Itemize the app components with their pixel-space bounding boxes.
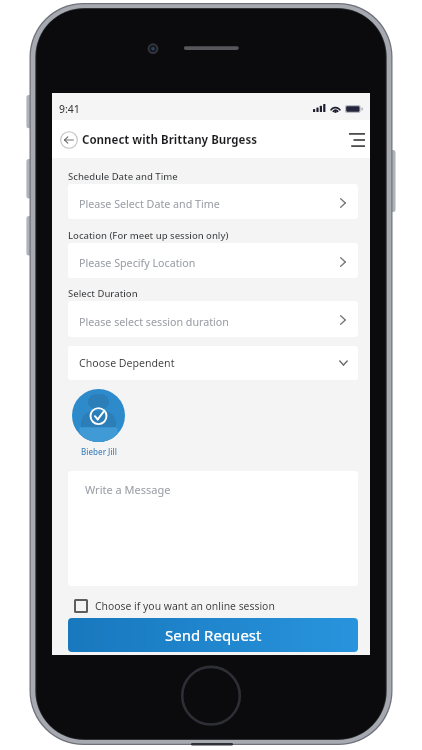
button[interactable]: Back (58, 129, 79, 150)
button[interactable]: Write a Message (68, 471, 358, 586)
staticText: Location (For meet up session only) (68, 229, 229, 242)
staticText: Choose if you want an online session (95, 599, 275, 613)
button[interactable]: Choose Dependent (68, 346, 358, 380)
staticText: Please Specify Location (79, 256, 196, 271)
button[interactable]: Bieber Jill (72, 389, 125, 457)
staticText: Please select session duration (79, 315, 229, 330)
staticText: Please Select Date and Time (79, 197, 220, 212)
staticText: Select Duration (68, 287, 138, 300)
staticText: Schedule Date and Time (68, 170, 178, 183)
button[interactable]: Menu (347, 130, 366, 149)
staticText: Choose Dependent (79, 356, 175, 370)
staticText: 9:41 (59, 102, 80, 116)
button[interactable]: Please Specify Location (68, 243, 358, 278)
button[interactable]: Send Request (68, 618, 358, 652)
button[interactable]: Please select session duration (68, 301, 358, 337)
button[interactable]: Choose if you want an online session (68, 595, 358, 617)
staticText: Send Request (165, 625, 262, 645)
staticText: Connect with Brittany Burgess (82, 132, 257, 148)
button[interactable]: Please Select Date and Time (68, 184, 358, 219)
staticText: Bieber Jill (81, 446, 117, 457)
staticText: Write a Message (85, 482, 171, 497)
